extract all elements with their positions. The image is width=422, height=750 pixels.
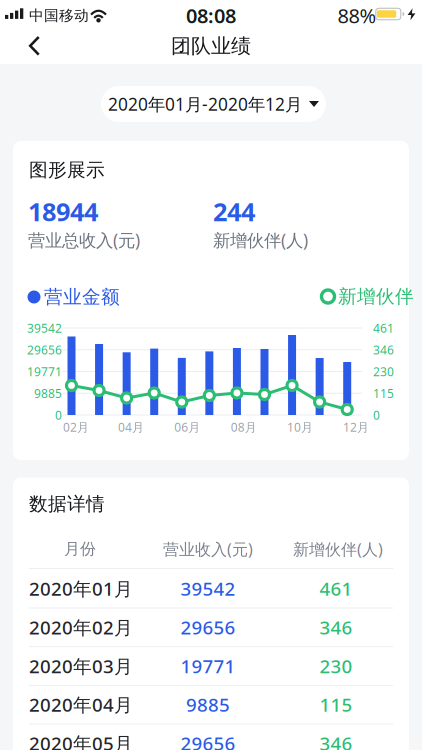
staticText: 0: [55, 407, 62, 423]
staticText: 115: [319, 692, 352, 717]
staticText: 9885: [34, 385, 62, 401]
staticText: 08:08: [186, 2, 236, 29]
staticText: 团队业绩: [171, 34, 251, 58]
staticText: 营业收入(元): [163, 538, 253, 560]
staticText: 08月: [231, 419, 257, 435]
staticText: 88%: [337, 2, 376, 29]
staticText: 2020年05月: [29, 731, 133, 750]
staticText: 月份: [64, 539, 96, 559]
staticText: 19771: [27, 363, 62, 379]
staticText: 04月: [118, 419, 144, 435]
staticText: 230: [373, 363, 394, 379]
staticText: 数据详情: [29, 492, 105, 515]
staticText: 230: [319, 653, 352, 678]
staticText: 39542: [180, 576, 235, 601]
staticText: 346: [373, 342, 394, 358]
staticText: 29656: [27, 342, 62, 358]
staticText: 19771: [180, 653, 235, 678]
staticText: 9885: [186, 692, 230, 717]
staticText: 新增伙伴(人): [213, 228, 308, 251]
staticText: 中国移动: [29, 6, 89, 24]
staticText: 461: [319, 576, 352, 601]
staticText: 营业总收入(元): [28, 228, 140, 251]
staticText: 39542: [27, 320, 62, 336]
staticText: 346: [319, 731, 352, 750]
staticText: 18944: [28, 195, 98, 228]
staticText: 新增伙伴(人): [293, 538, 383, 560]
staticText: 营业金额: [44, 285, 120, 308]
staticText: 2020年04月: [29, 692, 133, 717]
button[interactable]: 返回: [0, 0, 422, 64]
staticText: 244: [213, 195, 255, 228]
staticText: 461: [373, 320, 394, 336]
staticText: 29656: [180, 731, 235, 750]
button[interactable]: 2020年01月-2020年12月: [101, 86, 326, 122]
staticText: 12月: [343, 419, 369, 435]
staticText: 0: [373, 407, 380, 423]
staticText: 06月: [174, 419, 200, 435]
staticText: 新增伙伴: [338, 285, 414, 308]
staticText: 2020年02月: [29, 615, 133, 640]
staticText: 10月: [287, 419, 313, 435]
staticText: 2020年03月: [29, 653, 133, 678]
staticText: 29656: [180, 615, 235, 640]
staticText: 2020年01月-2020年12月: [108, 92, 302, 115]
staticText: 2020年01月: [29, 576, 133, 601]
staticText: 115: [373, 385, 394, 401]
staticText: 02月: [63, 419, 89, 435]
staticText: 346: [319, 615, 352, 640]
staticText: 图形展示: [29, 158, 105, 181]
